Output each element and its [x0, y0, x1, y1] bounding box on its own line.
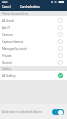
staticText: Phone Content Drive [2, 12, 29, 16]
button[interactable]: Capture/demos [0, 38, 67, 45]
button[interactable]: Auto save to selected album [0, 104, 67, 119]
staticText: All Gmail [2, 19, 58, 23]
button[interactable]: Cancel [0, 5, 11, 9]
staticText: Gallery [2, 67, 11, 71]
staticText: Private [2, 54, 58, 58]
button[interactable]: All Gallery [0, 71, 67, 80]
button[interactable]: Private [0, 52, 67, 59]
button[interactable]: All Gmail [0, 17, 67, 24]
staticText: Card selection [20, 5, 40, 9]
other: Auto save toggle [52, 109, 64, 115]
button[interactable]: Shared [0, 59, 67, 66]
staticText: Auto save to selected album [2, 110, 52, 114]
staticText: Shared [2, 61, 58, 65]
staticText: Managed by touch [2, 47, 58, 51]
staticText: Camera [2, 33, 58, 37]
button[interactable]: Camera [0, 31, 67, 38]
staticText: Capture/demos [2, 40, 58, 44]
button[interactable]: Ask IT [0, 24, 67, 31]
button[interactable]: Managed by touch [0, 45, 67, 52]
staticText: All Gallery [2, 74, 58, 78]
staticText: Ask IT [2, 26, 58, 30]
